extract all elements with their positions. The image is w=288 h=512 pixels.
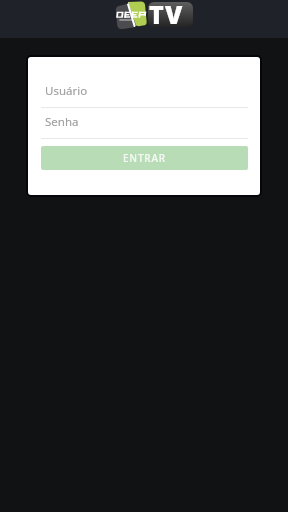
button[interactable]: Usuário [41, 88, 248, 108]
other: Deep TV [114, 0, 194, 32]
staticText: Usuário [45, 83, 88, 99]
button[interactable]: ENTRAR [41, 146, 248, 170]
staticText: Senha [45, 114, 79, 130]
button[interactable]: Senha [41, 119, 248, 139]
staticText: ENTRAR [123, 151, 166, 165]
staticText: TV [149, 0, 184, 29]
